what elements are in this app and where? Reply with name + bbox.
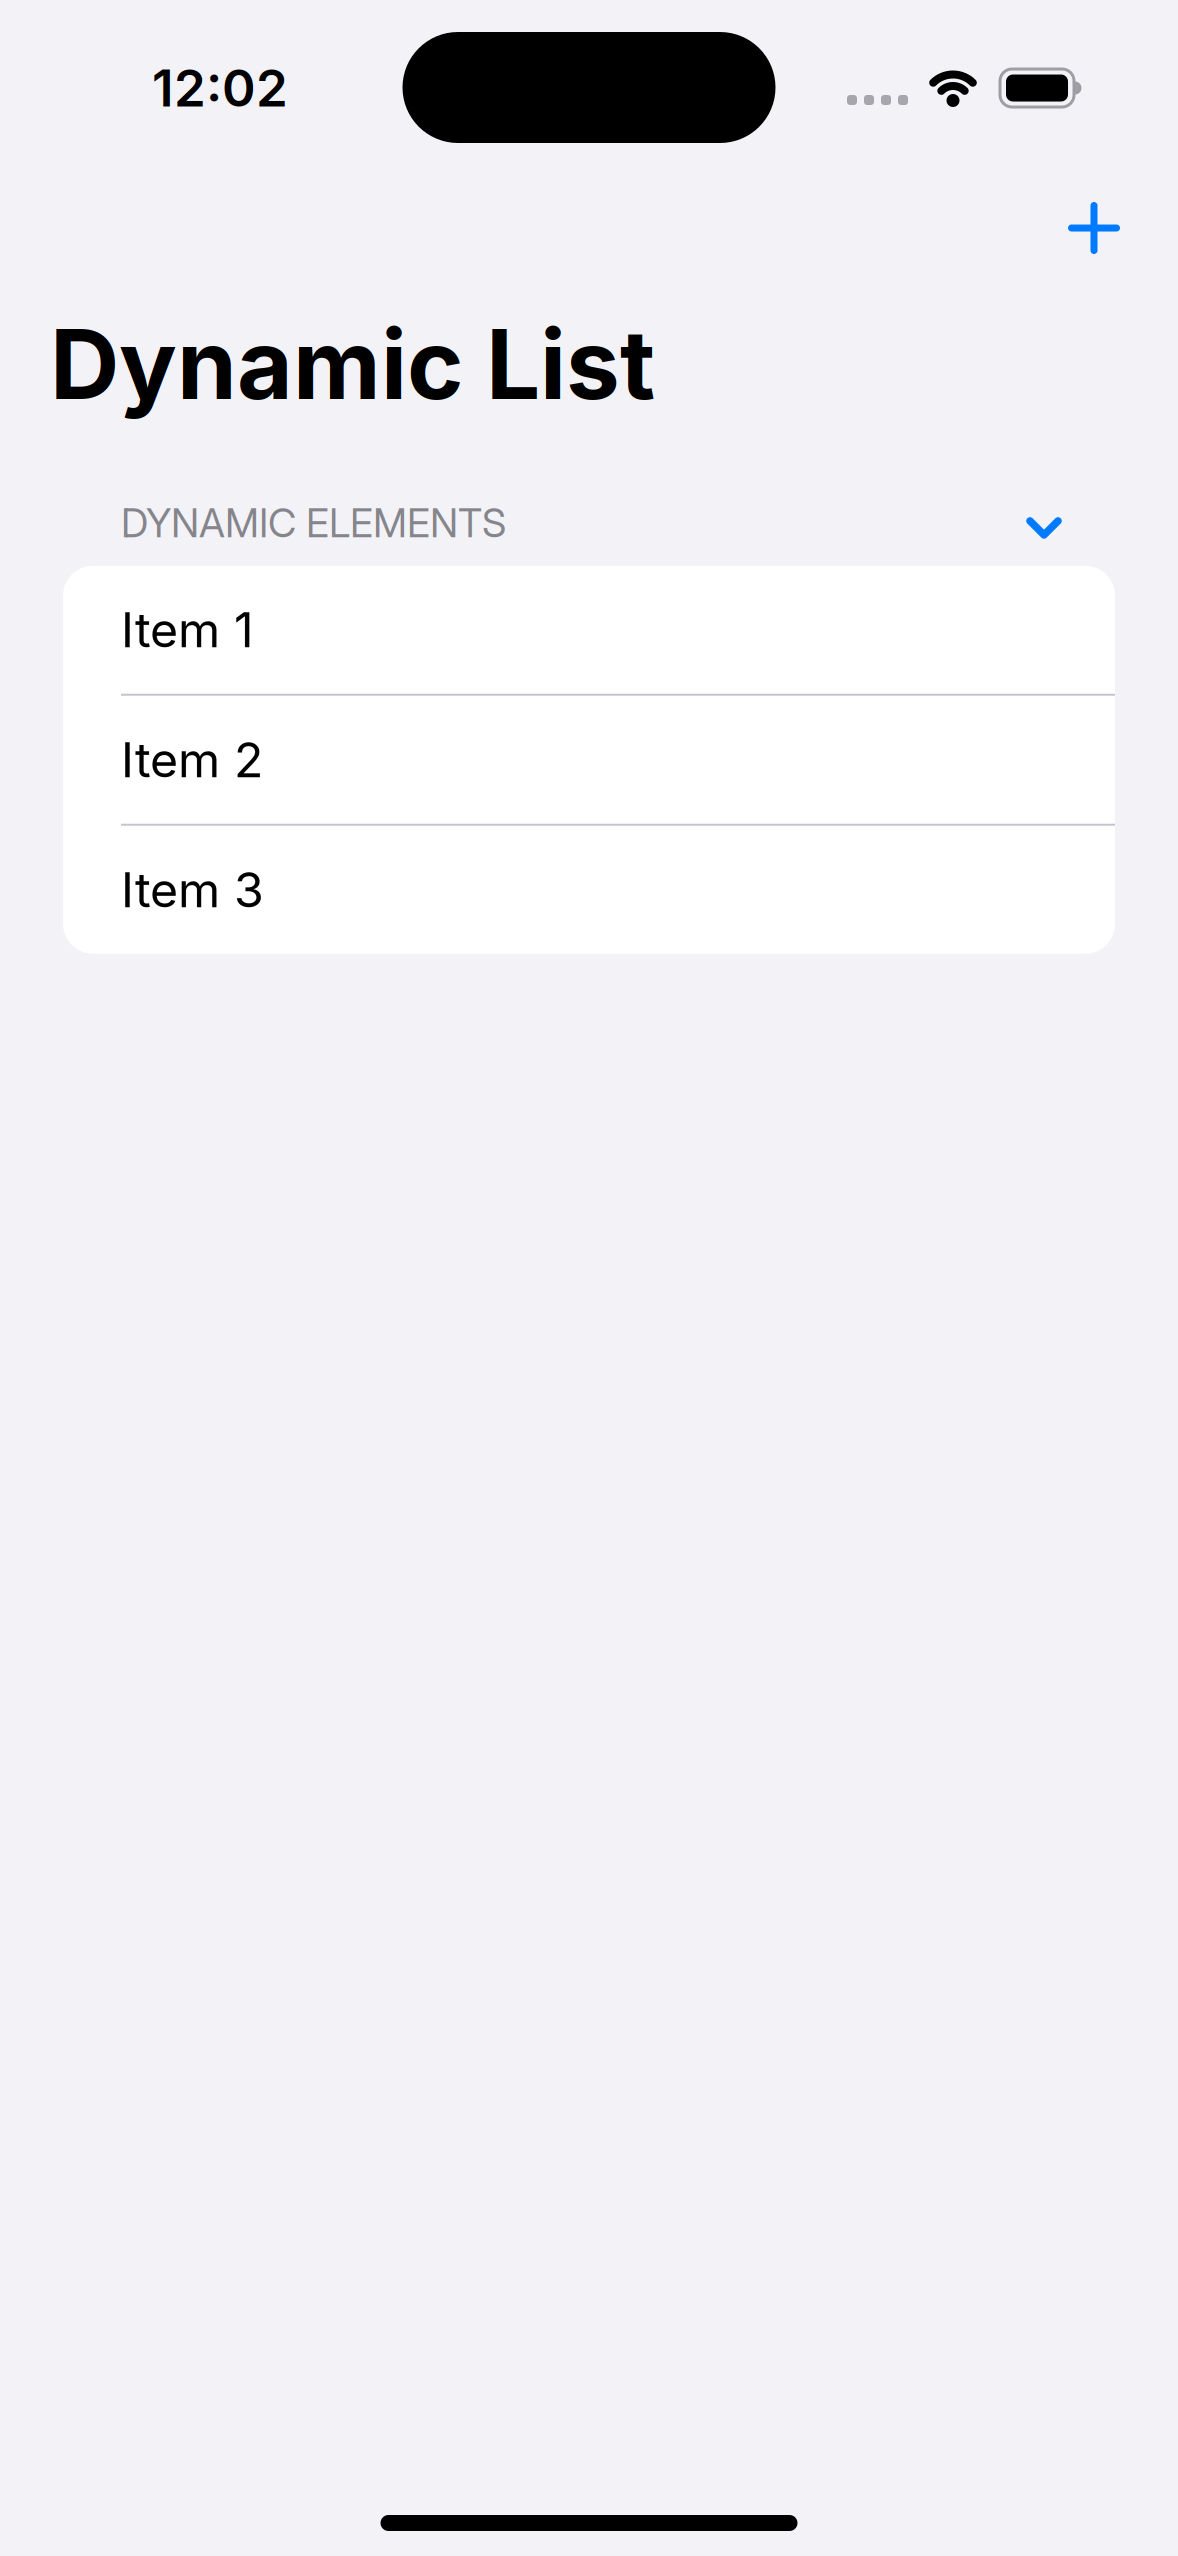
staticText: Item 2 <box>121 731 263 789</box>
staticText: 12:02 <box>152 57 288 119</box>
button[interactable]: Item 2 <box>63 696 1115 824</box>
staticText: Dynamic List <box>50 306 655 422</box>
staticText: DYNAMIC ELEMENTS <box>121 499 506 547</box>
button[interactable]: Add <box>1068 202 1120 254</box>
button[interactable]: Item 1 <box>63 566 1115 694</box>
button[interactable]: Collapse Dynamic Elements <box>0 499 1178 547</box>
staticText: Item 1 <box>121 601 254 659</box>
staticText: Item 3 <box>121 861 264 919</box>
button[interactable]: Item 3 <box>63 826 1115 954</box>
